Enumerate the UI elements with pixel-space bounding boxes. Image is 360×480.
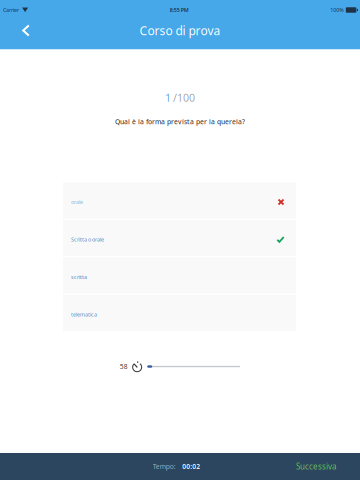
button[interactable]: scritta bbox=[63, 257, 296, 293]
button[interactable]: Back bbox=[0, 20, 52, 41]
staticText: 8:55 PM bbox=[170, 6, 189, 14]
staticText: 1 bbox=[165, 90, 171, 105]
button[interactable]: Successiva bbox=[284, 453, 360, 480]
staticText: /100 bbox=[173, 90, 195, 105]
staticText: scritta bbox=[71, 273, 87, 281]
staticText: Successiva bbox=[296, 461, 336, 472]
staticText: Carrier bbox=[3, 6, 19, 14]
button[interactable]: orale bbox=[63, 182, 296, 218]
staticText: 58 bbox=[120, 362, 128, 371]
staticText: telematica bbox=[71, 311, 97, 318]
button[interactable]: Scritta o orale bbox=[63, 220, 296, 256]
staticText: Tempo: bbox=[153, 462, 176, 471]
staticText: Corso di prova bbox=[139, 22, 220, 38]
staticText: Scritta o orale bbox=[71, 236, 104, 243]
staticText: Qual è la forma prevista per la querela? bbox=[115, 117, 245, 126]
staticText: orale bbox=[71, 198, 83, 206]
staticText: 00:02 bbox=[182, 462, 200, 471]
button[interactable]: telematica bbox=[63, 295, 296, 331]
staticText: 100% bbox=[330, 6, 343, 14]
